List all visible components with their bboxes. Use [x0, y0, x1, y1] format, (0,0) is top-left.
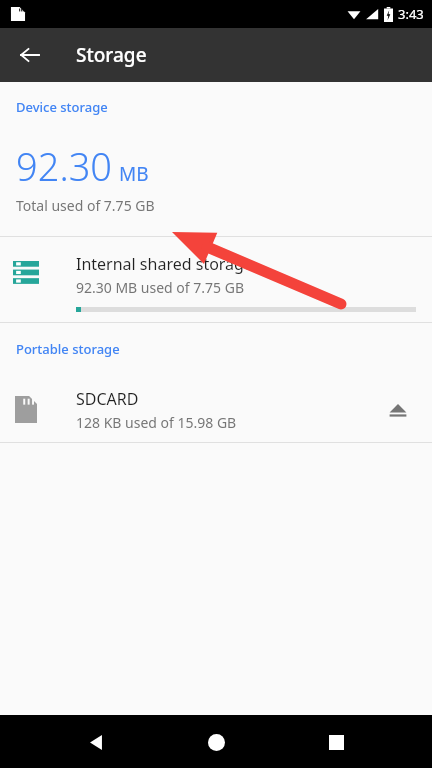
button[interactable]: Back	[72, 718, 120, 766]
staticText: Total used of 7.75 GB	[16, 196, 155, 215]
staticText: SDCARD	[76, 388, 139, 410]
staticText: 3:43	[398, 5, 424, 23]
button[interactable]: Home	[192, 718, 240, 766]
staticText: Storage	[76, 42, 147, 68]
staticText: MB	[119, 161, 149, 187]
staticText: Device storage	[16, 98, 108, 116]
button[interactable]: Recent apps	[312, 718, 360, 766]
button[interactable]: Eject SD card	[376, 388, 420, 432]
staticText: Portable storage	[16, 340, 120, 358]
staticText: 92.30	[16, 140, 113, 192]
button[interactable]: Internal shared storage	[0, 237, 432, 322]
staticText: 128 KB used of 15.98 GB	[76, 413, 237, 432]
staticText: Internal shared storage	[76, 253, 253, 275]
staticText: 92.30 MB used of 7.75 GB	[76, 278, 244, 297]
button[interactable]: SDCARD	[0, 377, 432, 442]
button[interactable]: Back	[10, 35, 50, 75]
